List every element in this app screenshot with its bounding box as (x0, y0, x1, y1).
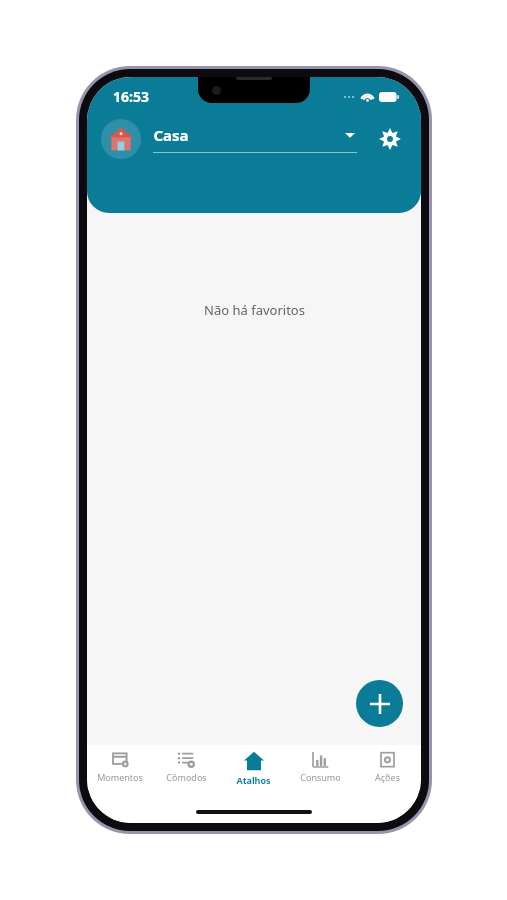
button[interactable]: Settings (373, 122, 407, 156)
button[interactable]: Ações (354, 751, 421, 783)
button[interactable]: Consumo (287, 751, 354, 783)
button[interactable]: Casa (153, 125, 357, 153)
staticText: Ações (375, 771, 400, 783)
staticText: Cômodos (166, 771, 207, 783)
staticText: Atalhos (236, 774, 271, 786)
staticText: Momentos (97, 771, 143, 783)
button[interactable]: Atalhos (220, 751, 287, 786)
staticText: 16:53 (113, 87, 149, 106)
staticText: Consumo (300, 771, 341, 783)
staticText: Casa (153, 125, 189, 145)
button[interactable] (101, 119, 141, 159)
button[interactable]: Momentos (87, 751, 153, 783)
button[interactable]: Cômodos (153, 751, 220, 783)
button[interactable]: Add (356, 680, 403, 727)
staticText: Não há favoritos (204, 301, 305, 319)
